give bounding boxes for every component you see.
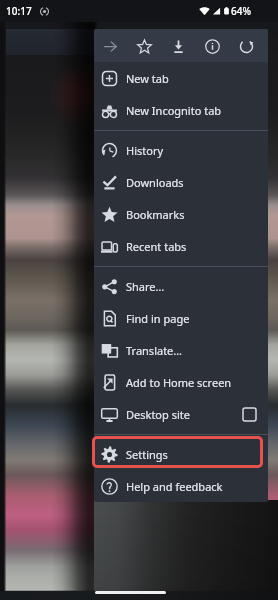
staticText: 64% xyxy=(231,4,251,18)
button[interactable]: Find in page xyxy=(94,302,268,334)
button[interactable]: Reload xyxy=(233,33,259,59)
button[interactable]: Add to Home screen xyxy=(94,366,268,398)
staticText: Settings xyxy=(126,447,168,462)
button[interactable]: Help and feedback xyxy=(94,470,268,502)
staticText: Share… xyxy=(126,279,165,294)
staticText: Bookmarks xyxy=(126,207,185,222)
staticText: 10:17 xyxy=(6,4,32,18)
staticText: New Incognito tab xyxy=(126,103,222,118)
button[interactable]: Page info xyxy=(199,33,225,59)
button[interactable]: Downloads xyxy=(94,166,268,198)
staticText: Find in page xyxy=(126,311,190,326)
staticText: Add to Home screen xyxy=(126,375,232,390)
button[interactable]: New tab xyxy=(94,62,268,94)
button[interactable]: Desktop site xyxy=(94,398,268,430)
staticText: Desktop site xyxy=(126,407,190,422)
staticText: History xyxy=(126,143,164,158)
button[interactable]: Settings xyxy=(94,438,268,470)
staticText: Help and feedback xyxy=(126,479,223,494)
button[interactable]: Translate… xyxy=(94,334,268,366)
button[interactable]: Share… xyxy=(94,270,268,302)
button[interactable]: New Incognito tab xyxy=(94,94,268,126)
button[interactable]: Download page xyxy=(165,33,191,59)
staticText: Recent tabs xyxy=(126,239,187,254)
button[interactable]: Bookmarks xyxy=(94,198,268,230)
button[interactable]: Bookmark xyxy=(131,33,157,59)
button[interactable]: History xyxy=(94,134,268,166)
staticText: Translate… xyxy=(126,343,183,358)
staticText: New tab xyxy=(126,71,169,86)
button[interactable]: Forward xyxy=(97,33,123,59)
staticText: Downloads xyxy=(126,175,184,190)
button[interactable]: Recent tabs xyxy=(94,230,268,262)
